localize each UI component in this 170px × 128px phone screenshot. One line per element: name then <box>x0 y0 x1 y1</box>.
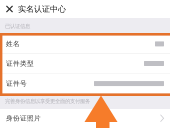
staticText: 姓名 <box>6 40 20 48</box>
staticText: 证件类型 <box>6 59 34 68</box>
button[interactable]: Close <box>0 0 18 18</box>
button[interactable]: 姓名 <box>0 34 170 53</box>
staticText: 实名认证中心 <box>18 4 66 14</box>
staticText: 已认证信息 <box>5 23 30 30</box>
staticText: 完善身份信息以享受更全面的支付服务 <box>5 98 90 105</box>
button[interactable]: 证件类型 <box>0 54 170 73</box>
staticText: 身份证照片 <box>6 114 41 122</box>
button[interactable]: 证件号 <box>0 74 170 93</box>
staticText: 证件号 <box>6 79 27 88</box>
button[interactable]: 身份证照片 <box>0 109 170 127</box>
